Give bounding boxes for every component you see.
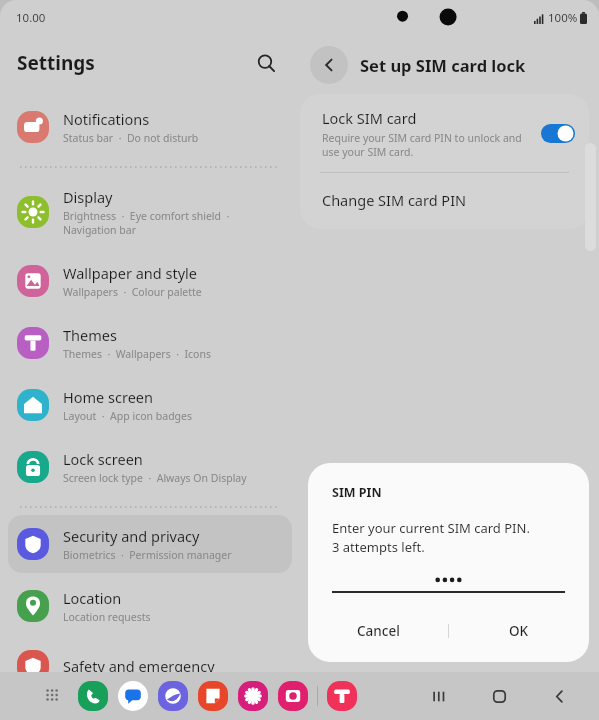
button[interactable]: Lock screen — [8, 438, 292, 496]
button[interactable]: Lock SIM card — [300, 94, 589, 172]
button[interactable]: Security and privacy — [8, 515, 292, 573]
staticText: Lock screen — [63, 449, 143, 469]
button[interactable]: Lock SIM card toggle — [541, 124, 575, 143]
staticText: Enter your current SIM card PIN. 3 attem… — [332, 519, 530, 556]
staticText: Set up SIM card lock — [360, 54, 526, 76]
button[interactable]: Search — [249, 46, 283, 80]
button[interactable]: OK — [449, 604, 589, 658]
staticText: 10.00 — [16, 10, 46, 26]
staticText: Security and privacy — [63, 526, 200, 546]
staticText: Display — [63, 187, 113, 207]
staticText: Notifications — [63, 109, 150, 129]
button[interactable]: Home screen — [8, 376, 292, 434]
button[interactable]: Display — [8, 176, 292, 248]
staticText: Status bar · Do not disturb — [63, 131, 199, 145]
staticText: Biometrics · Permission manager — [63, 548, 232, 562]
button[interactable]: Messages — [118, 681, 148, 711]
button[interactable]: Back — [541, 678, 577, 714]
button[interactable]: Camera — [278, 681, 308, 711]
staticText: 100% — [548, 10, 578, 26]
button[interactable]: Phone — [78, 681, 108, 711]
staticText: Screen lock type · Always On Display — [63, 471, 247, 485]
staticText: Safety and emergency — [63, 656, 215, 676]
staticText: Brightness · Eye comfort shield · Naviga… — [63, 209, 230, 237]
button[interactable]: Galaxy Store — [238, 681, 268, 711]
button[interactable]: Apps — [40, 683, 66, 709]
staticText: Lock SIM card — [322, 108, 417, 128]
staticText: SIM PIN — [332, 484, 382, 501]
staticText: Wallpaper and style — [63, 263, 197, 283]
button[interactable]: Home — [481, 678, 517, 714]
button[interactable]: Notes — [198, 681, 228, 711]
staticText: Layout · App icon badges — [63, 409, 193, 423]
staticText: Wallpapers · Colour palette — [63, 285, 202, 299]
staticText: Home screen — [63, 387, 153, 407]
staticText: Require your SIM card PIN to unlock and … — [322, 131, 522, 159]
staticText: Themes — [63, 325, 117, 345]
staticText: Settings — [17, 50, 95, 76]
staticText: Themes · Wallpapers · Icons — [63, 347, 211, 361]
staticText: Change SIM card PIN — [322, 190, 467, 210]
button[interactable]: Location — [8, 577, 292, 635]
button[interactable]: Cancel — [308, 604, 448, 658]
staticText: OK — [509, 622, 529, 640]
staticText: Location requests — [63, 610, 151, 624]
button[interactable]: Wallpaper and style — [8, 252, 292, 310]
button[interactable]: Themes — [327, 681, 357, 711]
button[interactable]: Notifications — [8, 98, 292, 156]
button[interactable]: Back — [310, 46, 348, 84]
button[interactable]: Internet — [158, 681, 188, 711]
button[interactable]: Safety and emergency — [8, 639, 292, 693]
button[interactable]: Recents — [421, 678, 457, 714]
button[interactable]: Themes — [8, 314, 292, 372]
staticText: Location — [63, 588, 122, 608]
button[interactable]: Change SIM card PIN — [300, 173, 589, 229]
staticText: Cancel — [357, 622, 400, 640]
